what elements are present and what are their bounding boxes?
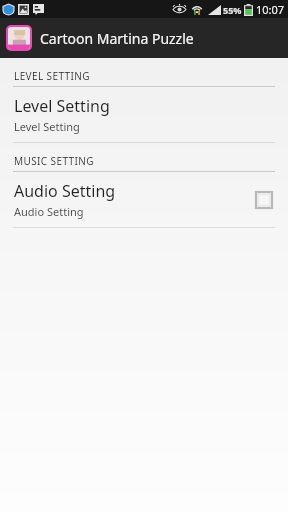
staticText: Audio Setting [14, 204, 84, 219]
button[interactable]: Audio Setting [0, 172, 288, 227]
staticText: Level Setting [14, 95, 110, 117]
staticText: 10:07 [256, 2, 285, 17]
staticText: Cartoon Martina Puzzle [40, 29, 194, 48]
button[interactable]: Level Setting [0, 87, 288, 142]
staticText: 55% [223, 4, 242, 16]
staticText: Level Setting [14, 119, 80, 134]
staticText: Audio Setting [14, 180, 116, 202]
staticText: MUSIC SETTING [14, 154, 95, 168]
button[interactable]: Audio Setting toggle [256, 192, 272, 208]
staticText: LEVEL SETTING [14, 69, 91, 83]
